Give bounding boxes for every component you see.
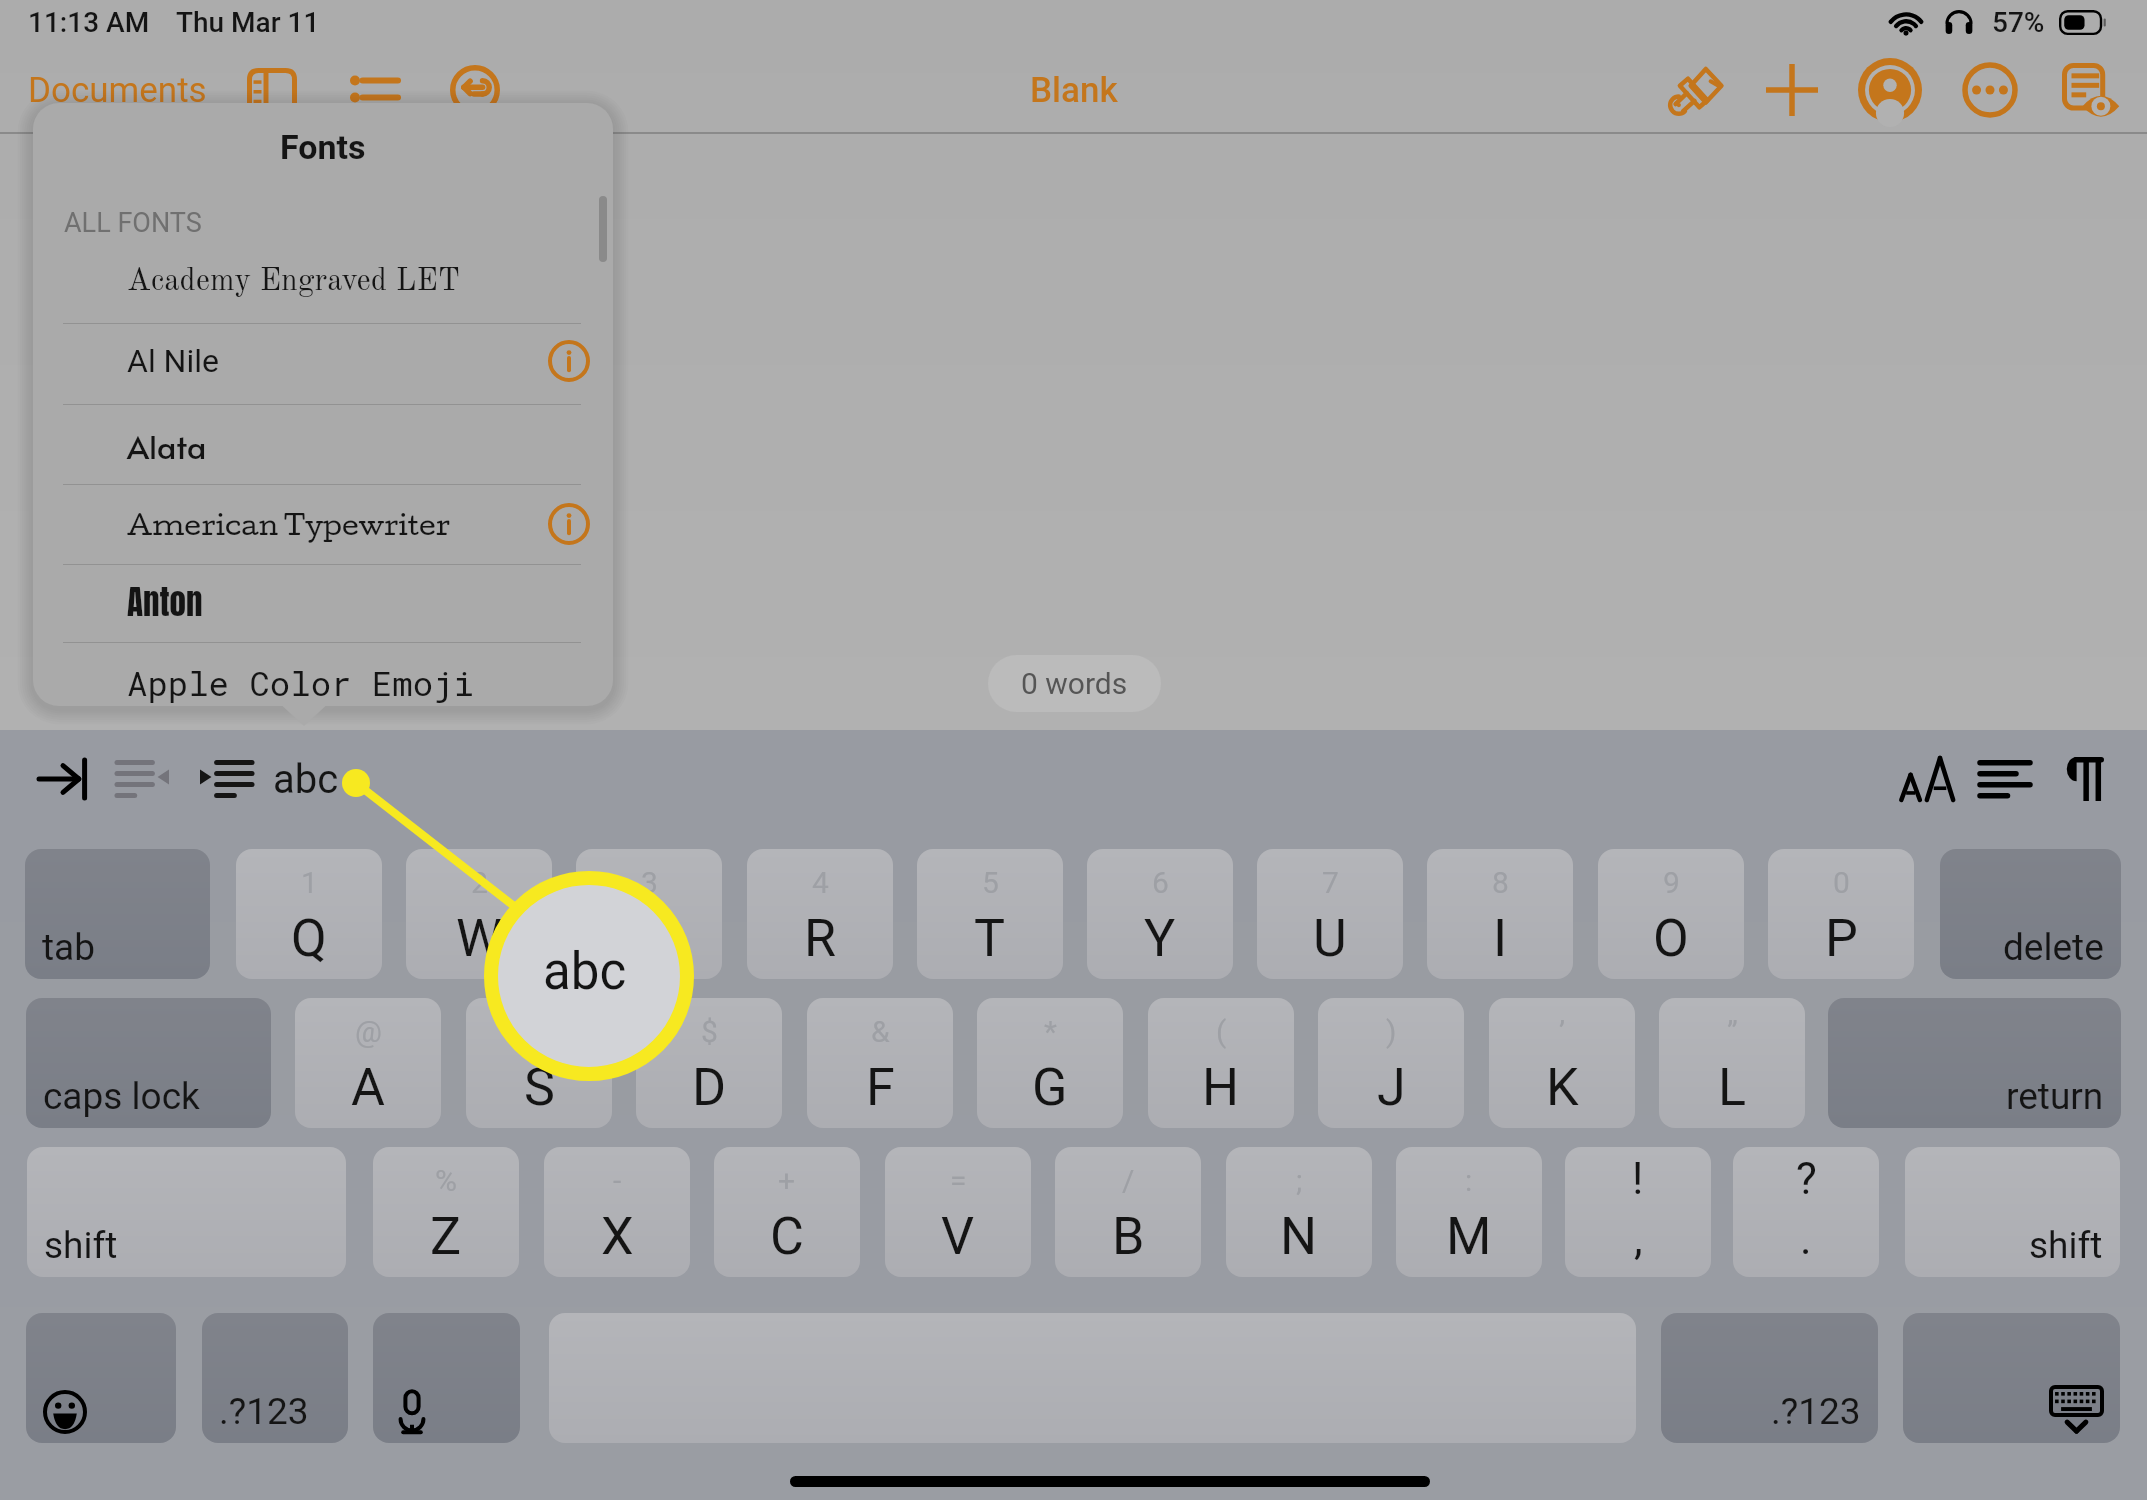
button[interactable]: Decrease indent [107, 743, 179, 815]
button[interactable]: Alignment [1969, 743, 2041, 815]
button[interactable]: ) [1318, 998, 1464, 1128]
staticText: ’ [1559, 1014, 1566, 1049]
button[interactable]: 1 [236, 849, 382, 979]
button[interactable]: ? [1733, 1147, 1879, 1277]
button[interactable]: Insert [1757, 48, 1827, 132]
button[interactable]: 8 [1427, 849, 1573, 979]
button[interactable]: $ [636, 998, 782, 1128]
button[interactable]: Font info [541, 333, 597, 389]
button[interactable]: Hide keyboard [1903, 1313, 2120, 1443]
button[interactable]: shift [27, 1147, 346, 1277]
button[interactable]: Documents [26, 48, 208, 132]
staticText: abc [273, 756, 339, 803]
button[interactable]: Anton [33, 562, 613, 642]
button[interactable]: 0 words [988, 655, 1161, 712]
button[interactable]: Format [1660, 48, 1730, 132]
button[interactable]: Apple Color Emoji [33, 642, 613, 706]
button[interactable]: + [714, 1147, 860, 1277]
staticText: abc [543, 942, 627, 1002]
button[interactable]: ’ [1489, 998, 1635, 1128]
button[interactable]: 2 [406, 849, 552, 979]
staticText: American Typewriter [127, 507, 451, 541]
button[interactable]: Paragraph marks [2049, 743, 2121, 815]
button[interactable]: Collaborate [1855, 48, 1925, 132]
staticText: B [1112, 1206, 1145, 1267]
staticText: . [1800, 1213, 1812, 1265]
button[interactable]: Blank [1020, 64, 1128, 117]
staticText: Alata [127, 424, 207, 468]
button[interactable]: 3 [576, 849, 722, 979]
button[interactable]: Alata [33, 406, 613, 486]
button[interactable]: delete [1940, 849, 2121, 979]
staticText: I [1493, 908, 1508, 969]
button[interactable]: Document view options [239, 48, 305, 132]
staticText: C [770, 1206, 804, 1267]
button[interactable]: caps lock [26, 998, 271, 1128]
staticText: * [1044, 1014, 1057, 1049]
button[interactable]: 4 [747, 849, 893, 979]
button[interactable]: American Typewriter [33, 484, 613, 564]
staticText: W [456, 908, 503, 969]
button[interactable]: / [1055, 1147, 1201, 1277]
button[interactable]: Text size [1892, 743, 1964, 815]
staticText: S [524, 1057, 555, 1118]
button[interactable]: : [1396, 1147, 1542, 1277]
button[interactable]: % [373, 1147, 519, 1277]
button[interactable]: Table of contents [341, 48, 407, 132]
button[interactable]: 0 [1768, 849, 1914, 979]
staticText: delete [2003, 926, 2104, 969]
staticText: / [1122, 1163, 1135, 1198]
button[interactable]: 9 [1598, 849, 1744, 979]
button[interactable]: Tab [27, 743, 99, 815]
button[interactable]: return [1828, 998, 2121, 1128]
staticText: 57% [1992, 6, 2045, 39]
staticText: 1 [301, 865, 318, 900]
button[interactable]: ; [1226, 1147, 1372, 1277]
button[interactable]: 7 [1257, 849, 1403, 979]
staticText: Academy Engraved LET [127, 266, 460, 297]
staticText: & [871, 1014, 890, 1049]
button[interactable]: Increase indent [190, 743, 262, 815]
staticText: 3 [641, 865, 658, 900]
staticText: Z [430, 1206, 462, 1267]
button[interactable]: & [807, 998, 953, 1128]
button[interactable]: shift [1905, 1147, 2120, 1277]
staticText: return [2006, 1075, 2104, 1118]
button[interactable]: Document preview [2054, 48, 2124, 132]
staticText: shift [44, 1224, 118, 1267]
button[interactable]: Dictation [373, 1313, 520, 1443]
staticText: # [530, 1014, 549, 1049]
staticText: T [974, 908, 1006, 969]
button[interactable]: @ [295, 998, 441, 1128]
button[interactable]: Al Nile [33, 321, 613, 401]
button[interactable]: Emoji [26, 1313, 176, 1443]
staticText: = [950, 1163, 967, 1198]
button[interactable]: ” [1659, 998, 1805, 1128]
button[interactable]: .?123 [202, 1313, 348, 1443]
staticText: + [778, 1163, 796, 1198]
staticText: 2 [471, 865, 488, 900]
button[interactable]: abc [266, 743, 346, 815]
button[interactable]: - [544, 1147, 690, 1277]
button[interactable]: More options [1955, 48, 2025, 132]
button[interactable]: Academy Engraved LET [33, 241, 613, 321]
button[interactable]: # [466, 998, 612, 1128]
staticText: J [1377, 1057, 1406, 1118]
staticText: ALL FONTS [64, 207, 202, 239]
button[interactable]: 6 [1087, 849, 1233, 979]
button[interactable]: * [977, 998, 1123, 1128]
button[interactable]: ! [1565, 1147, 1711, 1277]
staticText: 4 [812, 865, 829, 900]
button[interactable]: Undo [442, 48, 508, 132]
button[interactable]: 5 [917, 849, 1063, 979]
button[interactable]: Font info [541, 496, 597, 552]
staticText: D [692, 1057, 727, 1118]
staticText: Anton [127, 577, 203, 627]
staticText: Thu Mar 11 [176, 6, 320, 39]
staticText: H [1202, 1057, 1240, 1118]
button[interactable]: .?123 [1661, 1313, 1878, 1443]
button[interactable]: = [885, 1147, 1031, 1277]
button[interactable]: tab [25, 849, 210, 979]
button[interactable]: ( [1148, 998, 1294, 1128]
